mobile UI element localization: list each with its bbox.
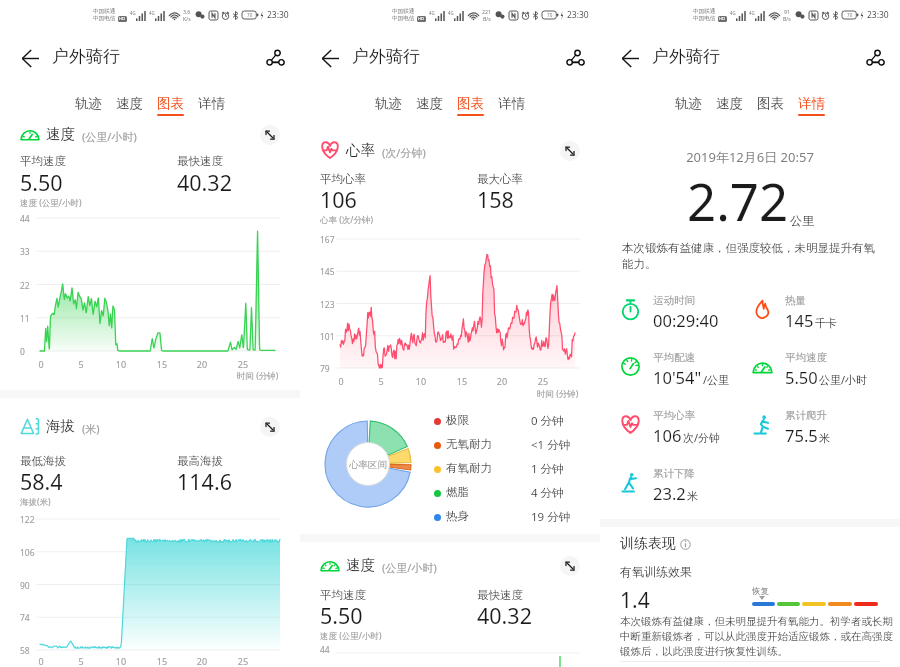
- staticText: 20: [190, 358, 214, 370]
- staticText: 221: [482, 8, 491, 15]
- button[interactable]: 图表: [150, 95, 191, 116]
- staticText: 图表: [457, 95, 484, 112]
- button[interactable]: Expand chart: [560, 556, 580, 576]
- staticText: 123: [320, 299, 335, 311]
- staticText: 19 分钟: [531, 509, 571, 525]
- button[interactable]: Share: [860, 43, 890, 73]
- staticText: 4G: [149, 10, 155, 16]
- staticText: (公里/小时): [82, 129, 137, 144]
- button[interactable]: 轨迹: [68, 95, 109, 114]
- staticText: 1.4: [620, 586, 650, 615]
- staticText: B/s: [483, 15, 491, 22]
- staticText: 22: [20, 280, 30, 292]
- staticText: 时间 (分钟): [237, 370, 279, 382]
- staticText: 5.50: [320, 601, 363, 630]
- staticText: 23:30: [267, 9, 289, 21]
- staticText: 145: [320, 266, 335, 278]
- staticText: 25: [531, 375, 555, 387]
- staticText: 70: [247, 12, 253, 18]
- staticText: 详情: [498, 95, 525, 112]
- staticText: 热量: [785, 294, 806, 307]
- staticText: 23.2: [653, 482, 686, 504]
- staticText: 心率: [346, 141, 375, 159]
- staticText: 106: [320, 185, 357, 214]
- button[interactable]: 速度: [409, 95, 450, 114]
- staticText: 恢复: [752, 586, 769, 597]
- staticText: 燃脂: [446, 485, 469, 499]
- staticText: 最高海拔: [177, 454, 223, 468]
- staticText: 0: [329, 375, 353, 387]
- staticText: 最快速度: [477, 588, 523, 602]
- staticText: 平均心率: [653, 409, 695, 422]
- button[interactable]: 速度: [109, 95, 150, 114]
- staticText: <1 分钟: [531, 437, 571, 453]
- staticText: 10'54": [653, 366, 702, 388]
- staticText: 1 分钟: [531, 461, 564, 477]
- staticText: 轨迹: [375, 95, 402, 112]
- staticText: 海拔(米): [20, 496, 51, 508]
- staticText: 4G: [429, 10, 435, 16]
- staticText: 4G: [448, 10, 454, 16]
- staticText: 速度: [346, 556, 375, 574]
- staticText: 图表: [757, 95, 784, 112]
- button[interactable]: Expand chart: [560, 141, 580, 161]
- button[interactable]: Back: [614, 42, 646, 74]
- button[interactable]: 图表: [450, 95, 491, 116]
- staticText: 本次锻炼有益健康，但未明显提升有氧能力。初学者或长期 中断重新锻炼者，可以从此强…: [620, 615, 893, 658]
- staticText: 平均速度: [20, 154, 66, 168]
- staticText: 轨迹: [675, 95, 702, 112]
- staticText: 平均速度: [785, 351, 827, 364]
- staticText: B/s: [783, 15, 791, 22]
- button[interactable]: 图表: [750, 95, 791, 114]
- staticText: 中国电信: [93, 15, 116, 22]
- staticText: 海拔: [46, 417, 75, 435]
- button[interactable]: 详情: [491, 95, 532, 114]
- staticText: 4 分钟: [531, 485, 564, 501]
- button[interactable]: Expand chart: [260, 125, 280, 145]
- staticText: 速度: [716, 95, 743, 112]
- button[interactable]: Share: [260, 43, 290, 73]
- button[interactable]: 轨迹: [368, 95, 409, 114]
- staticText: 最快速度: [177, 154, 223, 168]
- staticText: 122: [20, 514, 35, 526]
- staticText: 145: [785, 309, 814, 331]
- staticText: 户外骑行: [652, 46, 720, 67]
- staticText: 公里: [790, 213, 814, 228]
- staticText: 3.6: [183, 8, 191, 15]
- staticText: 58.4: [20, 467, 63, 496]
- button[interactable]: 轨迹: [668, 95, 709, 114]
- staticText: 106: [653, 424, 682, 446]
- staticText: 158: [477, 185, 514, 214]
- button[interactable]: Back: [14, 42, 46, 74]
- staticText: 运动时间: [653, 294, 695, 307]
- staticText: 千卡: [815, 316, 837, 330]
- staticText: 74: [20, 612, 30, 624]
- staticText: 心率区间: [325, 459, 411, 471]
- staticText: 91: [784, 8, 790, 15]
- staticText: 中国电信: [392, 15, 415, 22]
- staticText: 2.72: [687, 166, 789, 235]
- staticText: 心率 (次/分钟): [320, 214, 373, 226]
- button[interactable]: Expand chart: [260, 417, 280, 437]
- staticText: 平均速度: [320, 588, 366, 602]
- staticText: 10: [109, 358, 133, 370]
- staticText: 速度 (公里/小时): [20, 197, 82, 209]
- staticText: 10: [109, 655, 133, 667]
- staticText: 23:30: [867, 9, 889, 21]
- staticText: 10: [409, 375, 433, 387]
- button[interactable]: 详情: [191, 95, 232, 114]
- staticText: 106: [20, 547, 35, 559]
- button[interactable]: 速度: [709, 95, 750, 114]
- button[interactable]: Share: [560, 43, 590, 73]
- staticText: 23:30: [567, 9, 589, 21]
- staticText: 5.50: [785, 366, 818, 388]
- staticText: 详情: [798, 95, 825, 112]
- staticText: 90: [20, 580, 30, 592]
- staticText: 20: [490, 375, 514, 387]
- button[interactable]: 详情: [791, 95, 832, 116]
- staticText: 40.32: [477, 601, 532, 630]
- staticText: 中国电信: [693, 15, 716, 22]
- staticText: 图表: [157, 95, 184, 112]
- staticText: 速度 (公里/小时): [320, 630, 382, 642]
- button[interactable]: Back: [314, 42, 346, 74]
